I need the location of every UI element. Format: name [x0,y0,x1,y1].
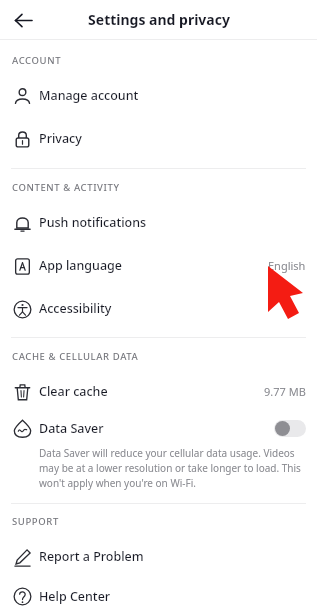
staticText: 9.77 MB [264,384,306,399]
button[interactable]: Data Saver [0,413,317,443]
staticText: Push notifications [39,214,147,231]
button[interactable]: Clear cache [0,370,317,413]
button[interactable]: Report a Problem [0,535,317,578]
staticText: Clear cache [39,383,108,400]
staticText: ACCOUNT [12,54,62,67]
staticText: CACHE & CELLULAR DATA [12,350,139,363]
button[interactable]: Accessibility [0,287,317,330]
staticText: Help Center [39,588,111,605]
button[interactable]: Data Saver toggle [274,420,306,437]
staticText: Manage account [39,87,139,104]
button[interactable]: Push notifications [0,201,317,244]
staticText: SUPPORT [12,515,59,528]
staticText: Report a Problem [39,548,144,565]
button[interactable]: Manage account [0,74,317,117]
staticText: English [268,258,306,273]
staticText: Data Saver [39,420,104,437]
button[interactable]: Back [6,3,40,37]
button[interactable]: App language [0,244,317,287]
staticText: App language [39,257,122,274]
staticText: Settings and privacy [88,10,230,29]
staticText: Privacy [39,130,82,147]
staticText: Accessibility [39,300,112,317]
staticText: CONTENT & ACTIVITY [12,181,120,194]
staticText: Data Saver will reduce your cellular dat… [39,446,303,490]
button[interactable]: Help Center [0,578,317,614]
button[interactable]: Privacy [0,117,317,160]
